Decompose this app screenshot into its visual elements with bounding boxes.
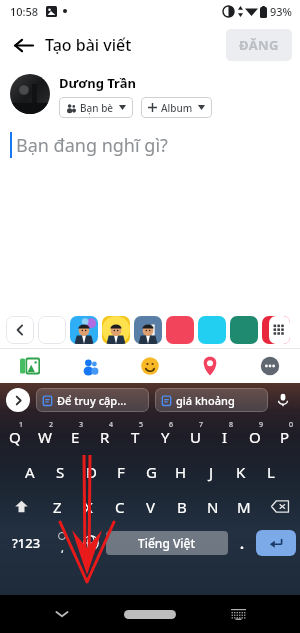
button[interactable]: M	[228, 489, 259, 524]
button[interactable]: B	[166, 489, 197, 524]
button[interactable]: Background color	[198, 316, 226, 344]
button[interactable]: Home	[124, 610, 176, 619]
staticText: giá khoảng	[176, 393, 262, 408]
button[interactable]: Blank sticker	[38, 316, 66, 344]
staticText: Tạo bài viết	[45, 34, 132, 56]
button[interactable]: Album	[141, 97, 212, 118]
button[interactable]: Enter	[256, 530, 296, 556]
button[interactable]: Previous	[6, 316, 34, 344]
button[interactable]: I	[210, 419, 240, 454]
staticText: 3	[79, 420, 84, 430]
button[interactable]: ĐĂNG	[226, 29, 292, 61]
button[interactable]: K	[226, 454, 256, 489]
staticText: J	[209, 462, 214, 482]
button[interactable]: S	[45, 454, 76, 489]
staticText: O	[249, 427, 261, 447]
staticText: H	[175, 462, 187, 482]
button[interactable]: V	[135, 489, 166, 524]
button[interactable]: Tiếng Việt	[106, 531, 228, 555]
button[interactable]: C	[104, 489, 135, 524]
staticText: M	[237, 497, 251, 517]
button[interactable]: Profile photo	[10, 74, 50, 114]
staticText: 4	[109, 420, 114, 430]
staticText: 1	[19, 420, 24, 430]
staticText: F	[117, 462, 125, 482]
button[interactable]: H	[166, 454, 196, 489]
staticText: C	[115, 497, 125, 517]
button[interactable]: L	[256, 454, 286, 489]
button[interactable]: E	[60, 419, 90, 454]
button[interactable]: Y	[150, 419, 180, 454]
button[interactable]: Switch keyboard	[224, 600, 252, 628]
button[interactable]: Check in	[180, 349, 240, 383]
button[interactable]: Expand toolbar	[6, 388, 30, 412]
button[interactable]: A	[14, 454, 45, 489]
button[interactable]: Backspace	[259, 489, 300, 524]
button[interactable]: Background color	[230, 316, 258, 344]
button[interactable]: R	[90, 419, 120, 454]
staticText: 6	[169, 420, 174, 430]
staticText: 5	[139, 420, 144, 430]
button[interactable]: F	[106, 454, 136, 489]
button[interactable]: ?123	[4, 524, 48, 562]
staticText: 9	[259, 420, 264, 430]
button[interactable]: O	[240, 419, 270, 454]
button[interactable]: Feeling	[120, 349, 180, 383]
staticText: D	[86, 462, 97, 482]
button[interactable]: P	[270, 419, 300, 454]
button[interactable]: Avatar sticker	[70, 316, 98, 344]
staticText: ?123	[12, 534, 41, 552]
staticText: K	[236, 462, 246, 482]
staticText: A	[25, 462, 35, 482]
button[interactable]: Avatar sticker	[102, 316, 130, 344]
button[interactable]: Hide keyboard	[48, 600, 76, 628]
staticText: P	[280, 427, 290, 447]
staticText: 2	[49, 420, 54, 430]
button[interactable]: G	[136, 454, 166, 489]
button[interactable]: J	[196, 454, 226, 489]
button[interactable]: X	[73, 489, 104, 524]
staticText: T	[131, 427, 140, 447]
button[interactable]: Voice input	[272, 389, 294, 411]
button[interactable]: T	[120, 419, 150, 454]
button[interactable]: Change keyboard language	[76, 524, 106, 562]
staticText: Dương Trần	[59, 74, 136, 92]
staticText: 10:58	[10, 4, 39, 19]
button[interactable]: Để truy cập...	[36, 388, 149, 412]
staticText: V	[146, 497, 156, 517]
staticText: Để truy cập...	[57, 393, 143, 408]
staticText: Q	[9, 427, 21, 447]
staticText: Tiếng Việt	[138, 535, 196, 551]
staticText: 93%	[270, 4, 292, 19]
staticText: 0	[289, 420, 294, 430]
button[interactable]: Emoji and comma	[48, 524, 76, 562]
button[interactable]: Avatar sticker	[134, 316, 162, 344]
button[interactable]: Back	[6, 28, 40, 62]
staticText: Bạn bè	[80, 101, 114, 115]
button[interactable]: D	[76, 454, 106, 489]
button[interactable]: More backgrounds	[262, 316, 290, 344]
button[interactable]: More options	[240, 349, 300, 383]
staticText: ĐĂNG	[239, 36, 279, 54]
staticText: R	[100, 427, 110, 447]
button[interactable]: Q	[0, 419, 30, 454]
staticText: G	[146, 462, 157, 482]
staticText: 8	[229, 420, 234, 430]
button[interactable]: N	[197, 489, 228, 524]
button[interactable]: W	[30, 419, 60, 454]
button[interactable]: giá khoảng	[155, 388, 268, 412]
staticText: W	[38, 427, 52, 447]
staticText: Bạn đang nghĩ gì?	[16, 133, 168, 158]
staticText: N	[207, 497, 219, 517]
button[interactable]: Z	[42, 489, 73, 524]
button[interactable]: Tag people	[60, 349, 120, 383]
staticText: X	[84, 497, 93, 517]
staticText: S	[56, 462, 65, 482]
button[interactable]: Period	[228, 524, 256, 562]
staticText: E	[71, 427, 80, 447]
button[interactable]: Shift	[0, 489, 42, 524]
button[interactable]: Photo	[0, 349, 60, 383]
button[interactable]: Background color	[166, 316, 194, 344]
button[interactable]: U	[180, 419, 210, 454]
button[interactable]: Bạn bè	[59, 97, 133, 118]
